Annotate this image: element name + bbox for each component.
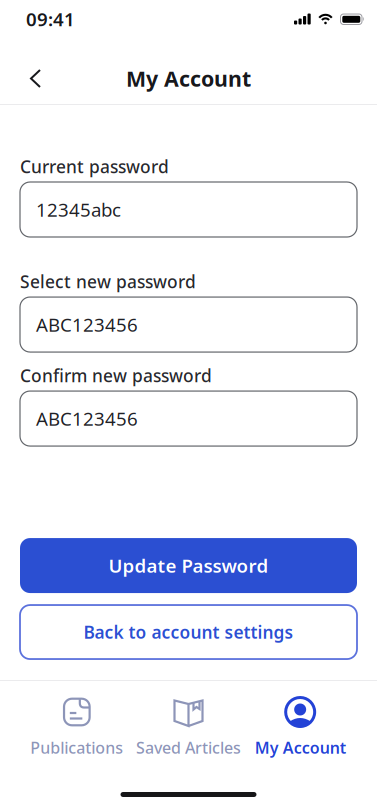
staticText: Current password — [20, 155, 169, 178]
staticText: 09:41 — [26, 7, 75, 31]
button[interactable]: Publications — [21, 696, 133, 758]
button[interactable]: My Account — [244, 696, 356, 758]
staticText: 12345abc — [36, 197, 121, 222]
staticText: ABC123456 — [36, 406, 138, 431]
staticText: My Account — [126, 64, 251, 93]
staticText: Saved Articles — [136, 737, 241, 758]
staticText: ABC123456 — [36, 312, 138, 337]
button[interactable]: Saved Articles — [133, 696, 244, 758]
staticText: Confirm new password — [20, 364, 212, 387]
staticText: Back to account settings — [83, 620, 293, 643]
staticText: Publications — [30, 737, 123, 758]
button[interactable]: Update Password — [20, 538, 357, 593]
staticText: My Account — [255, 737, 346, 758]
staticText: Select new password — [20, 270, 196, 293]
button[interactable]: Back — [0, 62, 42, 95]
button[interactable]: Back to account settings — [20, 605, 357, 659]
staticText: Update Password — [108, 553, 268, 578]
